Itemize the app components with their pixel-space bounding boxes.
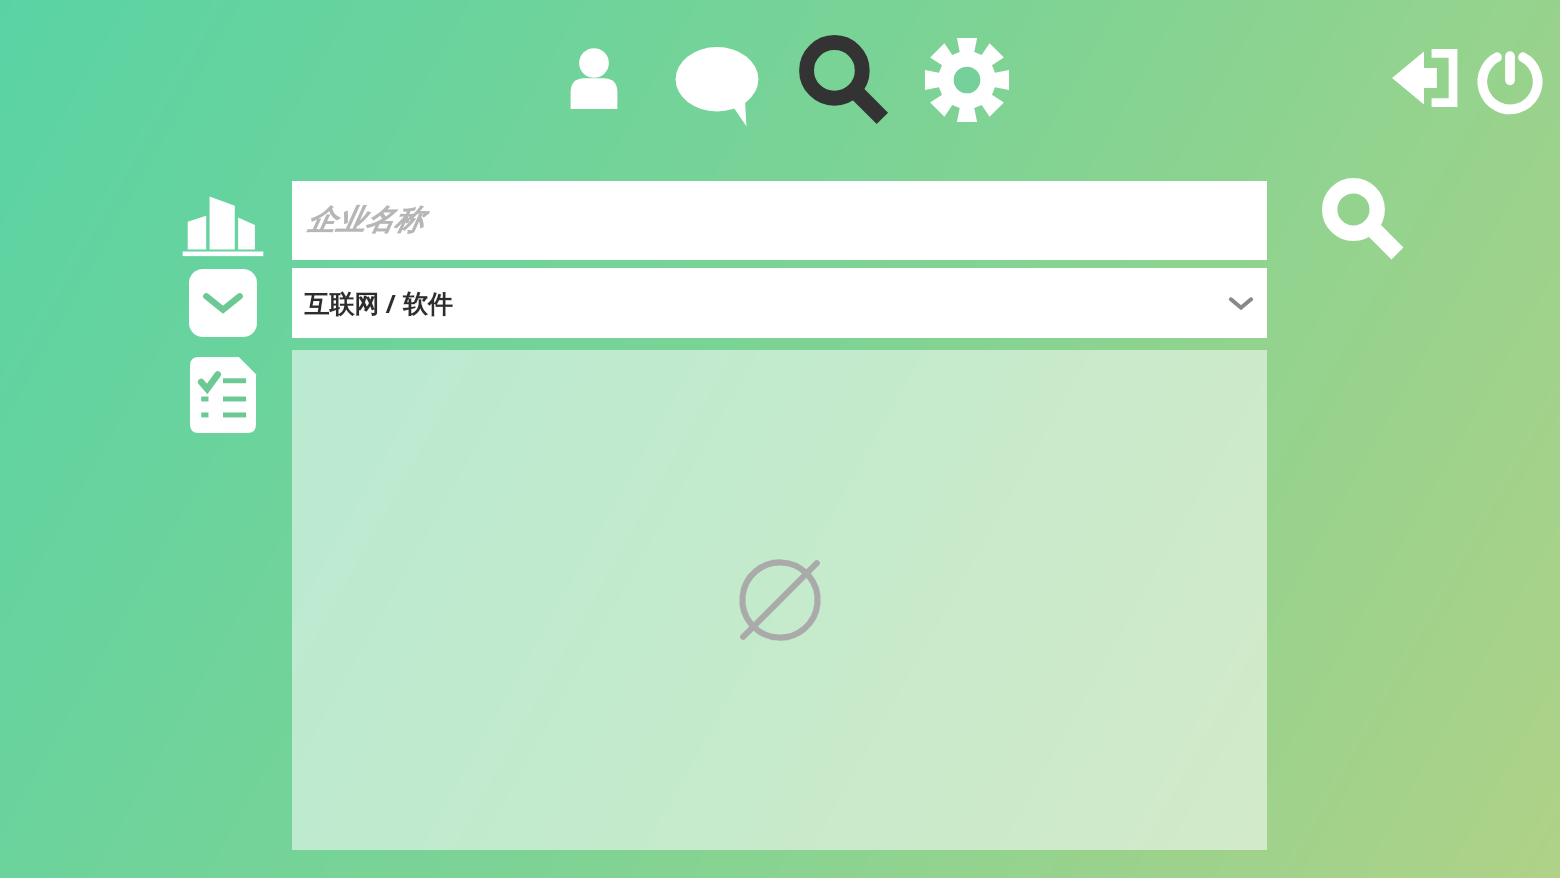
button[interactable]: Profile xyxy=(549,36,639,126)
button[interactable]: Company xyxy=(181,178,265,262)
button[interactable]: Messages xyxy=(671,36,763,128)
button[interactable]: Log out xyxy=(1389,40,1465,116)
button[interactable]: 互联网 / 软件 xyxy=(292,268,1267,338)
staticText: 企业名称 xyxy=(306,202,422,239)
button[interactable]: Search companies xyxy=(1320,176,1408,264)
button[interactable]: Power off xyxy=(1471,38,1549,116)
button[interactable]: Tasks xyxy=(190,357,256,433)
button[interactable]: Settings xyxy=(921,34,1013,126)
button[interactable]: Search xyxy=(796,32,892,128)
button[interactable]: Expand xyxy=(189,269,257,337)
staticText: 互联网 / 软件 xyxy=(304,286,453,320)
button[interactable]: 企业名称 xyxy=(292,181,1267,260)
